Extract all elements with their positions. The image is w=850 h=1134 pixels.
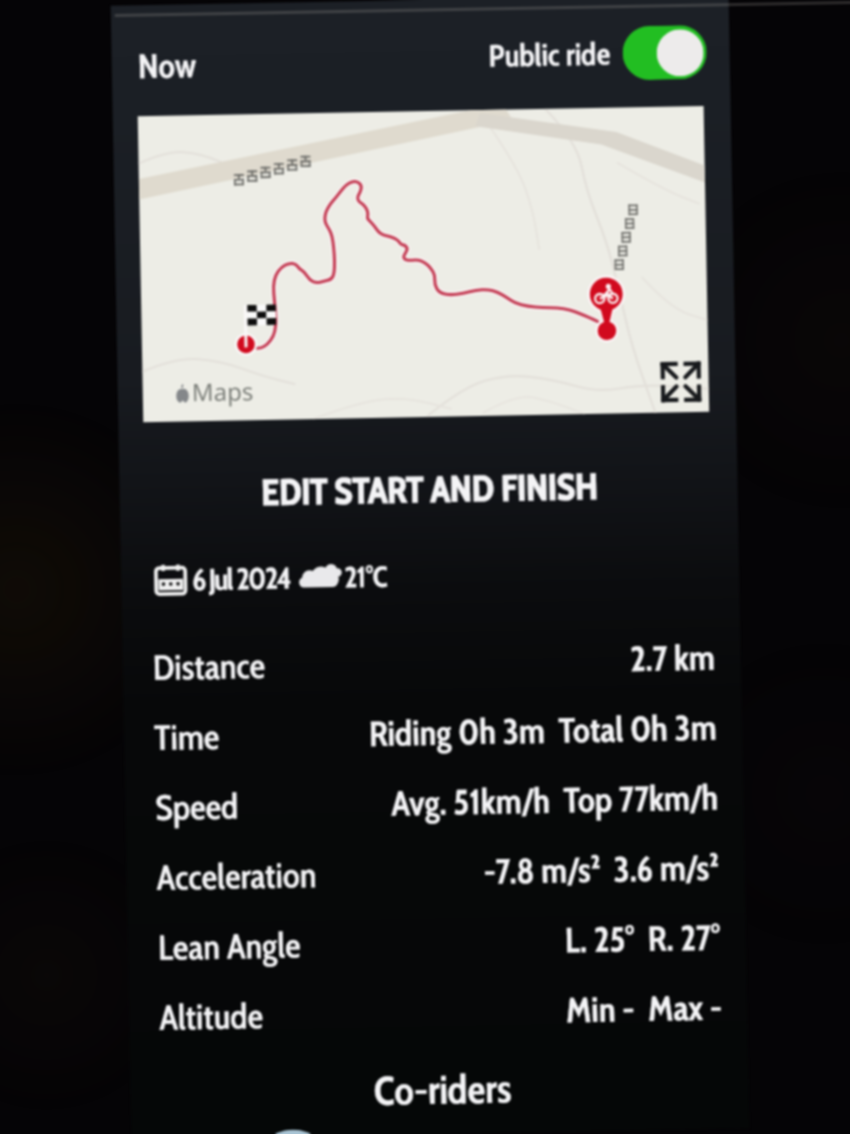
staticText: Altitude — [159, 994, 264, 1039]
staticText: 21°C — [344, 559, 388, 595]
staticText: Lean Angle — [157, 923, 301, 969]
staticText: Now — [137, 44, 197, 86]
button[interactable]: Co-rider — [253, 1129, 333, 1134]
button[interactable]: Altitude — [159, 972, 723, 1052]
staticText: Min - Max - — [566, 986, 722, 1032]
staticText: 2.7 km — [629, 636, 716, 680]
staticText: Speed — [155, 785, 239, 829]
button[interactable]: Distance — [152, 622, 716, 702]
staticText: Distance — [152, 644, 266, 689]
button[interactable]: 6 Jul 2024 — [154, 558, 388, 598]
staticText: Riding 0h 3m Total 0h 3m — [369, 706, 717, 755]
staticText: -7.8 m/s² 3.6 m/s² — [483, 846, 720, 893]
button[interactable]: Public ride — [488, 25, 707, 83]
staticText: Public ride — [488, 35, 611, 75]
button[interactable]: Co-riders — [136, 1059, 749, 1119]
staticText: Time — [154, 715, 220, 759]
button[interactable]: Lean Angle — [157, 902, 721, 982]
button[interactable]: Acceleration — [156, 832, 720, 912]
staticText: Maps — [191, 374, 254, 408]
button[interactable]: Time — [153, 692, 718, 772]
staticText: Acceleration — [156, 853, 317, 899]
button[interactable]: Ride map — [138, 106, 709, 422]
button[interactable]: EDIT START AND FINISH — [121, 461, 738, 517]
staticText: Avg. 51km/h Top 77km/h — [391, 776, 719, 825]
staticText: L. 25° R. 27° — [564, 916, 721, 962]
button[interactable]: Speed — [155, 762, 719, 842]
staticText: 6 Jul 2024 — [192, 560, 290, 597]
